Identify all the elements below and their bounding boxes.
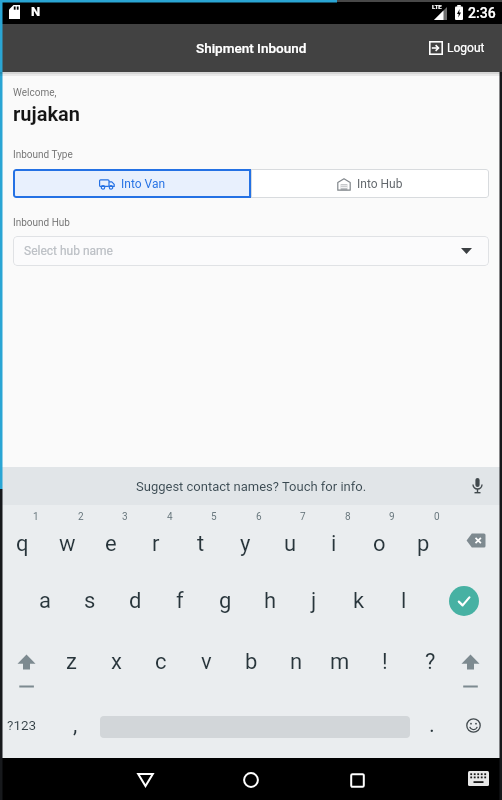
staticText: j <box>311 588 317 614</box>
staticText: v <box>201 649 212 675</box>
staticText: g <box>219 588 232 614</box>
button[interactable]: Select hub name <box>13 236 489 266</box>
button[interactable]: q <box>0 522 44 566</box>
button[interactable]: k <box>337 579 381 623</box>
button[interactable]: ?123 <box>0 703 44 747</box>
staticText: u <box>284 531 297 557</box>
staticText: 3 <box>122 511 128 523</box>
staticText: Suggest contact names? Touch for info. <box>136 479 367 494</box>
staticText: ! <box>382 649 388 675</box>
staticText: 6 <box>256 511 262 523</box>
button[interactable]: t <box>179 522 223 566</box>
button[interactable]: ? <box>408 640 452 684</box>
button[interactable]: Into Hub <box>251 169 489 198</box>
staticText: Logout <box>447 41 485 55</box>
button[interactable]: z <box>49 640 93 684</box>
button[interactable] <box>121 764 169 796</box>
button[interactable]: Suggest contact names? Touch for info. <box>0 467 502 505</box>
staticText: Welcome, <box>13 87 57 99</box>
staticText: w <box>59 531 76 557</box>
staticText: l <box>401 588 407 614</box>
staticText: Into Van <box>121 177 166 191</box>
button[interactable]: n <box>274 640 318 684</box>
button[interactable]: f <box>158 579 202 623</box>
staticText: z <box>66 649 77 675</box>
staticText: i <box>331 531 337 557</box>
staticText: b <box>245 649 258 675</box>
button[interactable]: e <box>89 522 133 566</box>
staticText: 9 <box>389 511 395 523</box>
staticText: r <box>152 531 160 557</box>
staticText: p <box>417 531 430 557</box>
button[interactable]: x <box>94 640 138 684</box>
staticText: 1 <box>33 511 39 523</box>
staticText: e <box>105 531 117 557</box>
staticText: 4 <box>167 511 173 523</box>
button[interactable]: Into Van <box>13 169 251 198</box>
staticText: 2:36 <box>468 5 496 21</box>
staticText: s <box>84 588 96 614</box>
staticText: Shipment Inbound <box>196 40 307 56</box>
staticText: 7 <box>300 511 306 523</box>
staticText: Inbound Type <box>13 149 73 161</box>
button[interactable]: y <box>223 522 267 566</box>
staticText: ? <box>425 649 436 675</box>
staticText: t <box>197 531 205 557</box>
staticText: LTE <box>432 3 442 10</box>
button[interactable] <box>227 764 275 796</box>
button[interactable] <box>454 518 498 562</box>
button[interactable]: i <box>312 522 356 566</box>
staticText: q <box>16 531 29 557</box>
button[interactable] <box>451 703 495 747</box>
staticText: N <box>31 4 41 19</box>
button[interactable]: m <box>318 640 362 684</box>
button[interactable]: d <box>113 579 157 623</box>
staticText: 8 <box>345 511 351 523</box>
staticText: h <box>264 588 277 614</box>
button[interactable]: , <box>53 703 97 747</box>
staticText: a <box>39 588 51 614</box>
staticText: rujakan <box>13 102 81 125</box>
button[interactable]: r <box>134 522 178 566</box>
staticText: Select hub name <box>24 244 113 258</box>
staticText: x <box>111 649 122 675</box>
button[interactable]: g <box>203 579 247 623</box>
staticText: 0 <box>434 511 440 523</box>
staticText: 2 <box>78 511 84 523</box>
button[interactable]: p <box>401 522 445 566</box>
button[interactable] <box>448 640 492 684</box>
button[interactable]: l <box>382 579 426 623</box>
button[interactable]: h <box>248 579 292 623</box>
button[interactable]: a <box>23 579 67 623</box>
button[interactable]: v <box>184 640 228 684</box>
staticText: m <box>330 649 350 675</box>
button[interactable]: c <box>139 640 183 684</box>
button[interactable] <box>449 586 479 616</box>
button[interactable]: o <box>357 522 401 566</box>
staticText: f <box>176 588 184 614</box>
button[interactable]: ! <box>363 640 407 684</box>
staticText: Into Hub <box>357 177 403 191</box>
staticText: c <box>155 649 167 675</box>
staticText: k <box>353 588 365 614</box>
staticText: y <box>240 531 251 557</box>
staticText: , <box>73 712 78 738</box>
staticText: n <box>290 649 303 675</box>
staticText: ?123 <box>7 717 37 733</box>
button[interactable]: Logout <box>429 41 485 55</box>
staticText: 5 <box>211 511 217 523</box>
staticText: Inbound Hub <box>13 217 70 229</box>
button[interactable]: . <box>410 703 454 747</box>
staticText: . <box>429 712 435 738</box>
button[interactable]: u <box>268 522 312 566</box>
staticText: o <box>373 531 386 557</box>
button[interactable]: w <box>45 522 89 566</box>
button[interactable]: s <box>68 579 112 623</box>
button[interactable] <box>460 764 496 792</box>
button[interactable] <box>333 764 381 796</box>
button[interactable]: j <box>292 579 336 623</box>
staticText: d <box>129 588 142 614</box>
button[interactable]: b <box>229 640 273 684</box>
button[interactable] <box>4 640 48 684</box>
